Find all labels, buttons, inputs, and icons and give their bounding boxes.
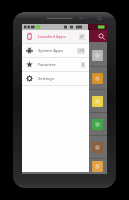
staticText: System Apps xyxy=(38,48,77,54)
button[interactable] xyxy=(22,113,107,135)
button[interactable]: System Apps xyxy=(22,44,89,57)
button[interactable] xyxy=(22,67,107,89)
button[interactable] xyxy=(22,136,107,158)
staticText: Favorites xyxy=(38,62,81,68)
button[interactable] xyxy=(22,159,107,174)
staticText: 118 xyxy=(78,49,84,53)
staticText: Settings xyxy=(38,76,85,82)
staticText: 0 xyxy=(82,63,84,67)
button[interactable]: Settings xyxy=(22,72,89,85)
staticText: Installed Apps xyxy=(38,34,79,40)
button[interactable] xyxy=(22,90,107,112)
button[interactable]: Favorites xyxy=(22,58,89,71)
staticText: 27 xyxy=(80,35,84,39)
button[interactable]: Search xyxy=(95,30,107,42)
button[interactable] xyxy=(22,44,107,66)
button[interactable]: Installed Apps xyxy=(22,30,89,43)
